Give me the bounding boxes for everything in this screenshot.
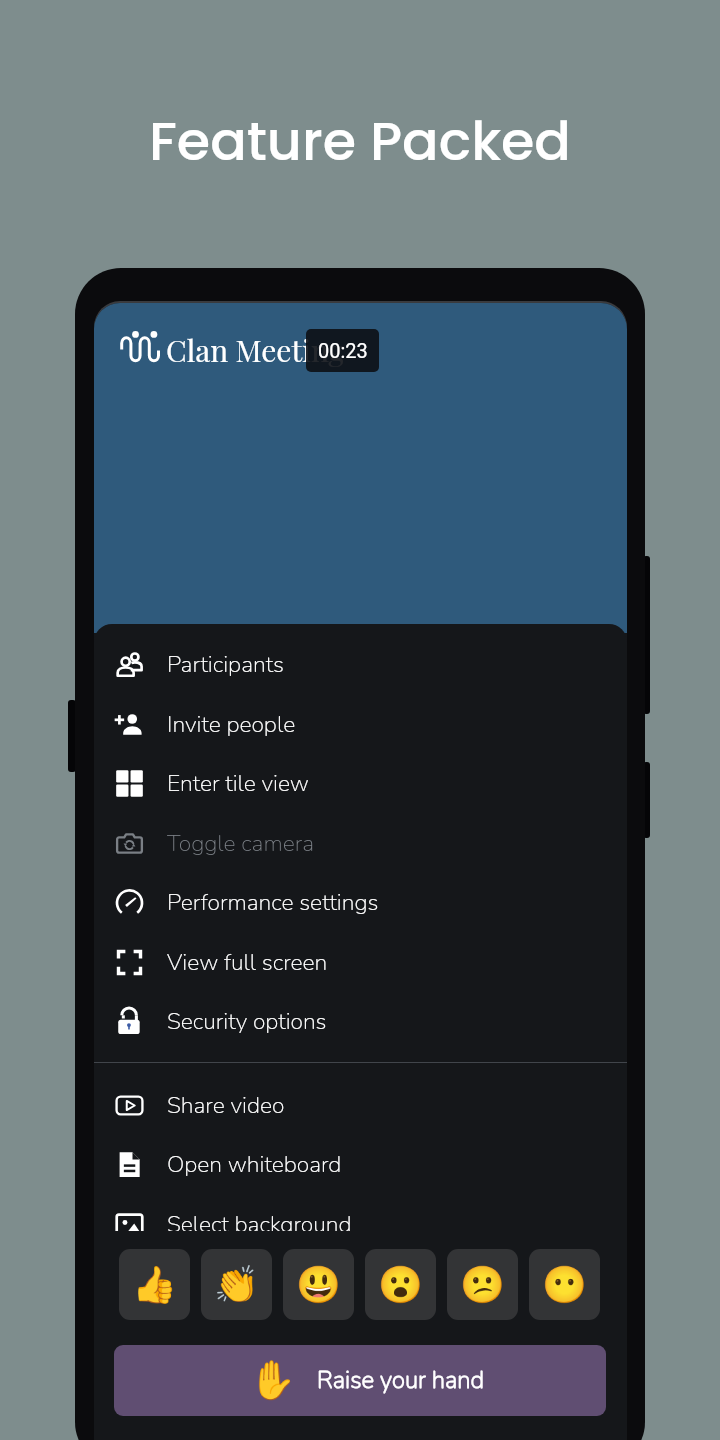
staticText: 00:23 (318, 339, 368, 362)
button[interactable]: Smile (283, 1249, 354, 1320)
button[interactable]: View full screen (94, 932, 627, 992)
button[interactable]: Open whiteboard (94, 1134, 627, 1194)
staticText: Select background (167, 1209, 352, 1231)
staticText: Open whiteboard (167, 1149, 342, 1180)
button[interactable]: Select background (94, 1194, 627, 1231)
button[interactable]: Clap (201, 1249, 272, 1320)
button[interactable]: Enter tile view (94, 753, 627, 813)
button[interactable]: ✋ (114, 1345, 606, 1416)
staticText: Enter tile view (167, 768, 309, 799)
staticText: 😃 (296, 1264, 341, 1306)
button[interactable]: Share video (94, 1075, 627, 1135)
staticText: Clan Meeting (166, 330, 345, 370)
staticText: Raise your hand (317, 1364, 485, 1397)
staticText: Performance settings (167, 887, 379, 918)
staticText: 😮 (378, 1264, 423, 1306)
button[interactable]: Invite people (94, 694, 627, 754)
staticText: Feature Packed (0, 103, 720, 179)
button[interactable]: Toggle camera (94, 813, 627, 873)
staticText: 👍 (132, 1264, 177, 1306)
button[interactable]: Security options (94, 991, 627, 1051)
staticText: ✋ (249, 1358, 297, 1403)
button[interactable]: Performance settings (94, 872, 627, 932)
staticText: View full screen (167, 947, 328, 978)
button[interactable]: Thumbs up (119, 1249, 190, 1320)
staticText: Participants (167, 649, 284, 680)
button[interactable]: Participants (94, 634, 627, 694)
staticText: 👏 (214, 1264, 259, 1306)
button[interactable]: Surprised (365, 1249, 436, 1320)
button[interactable]: Confused (447, 1249, 518, 1320)
staticText: 😕 (460, 1264, 505, 1306)
staticText: 😶 (542, 1264, 587, 1306)
staticText: Share video (167, 1090, 285, 1121)
button[interactable]: Silent (529, 1249, 600, 1320)
staticText: Invite people (167, 709, 296, 740)
staticText: Security options (167, 1006, 327, 1037)
staticText: Toggle camera (167, 828, 314, 859)
